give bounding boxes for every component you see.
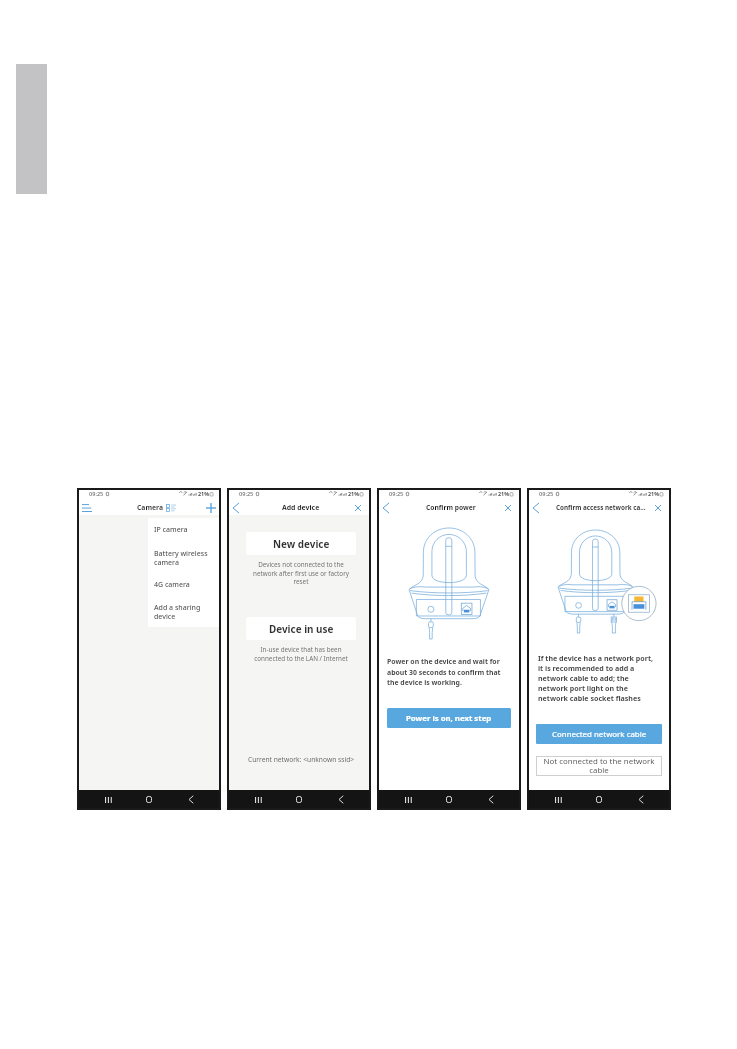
staticText: Add device [282,503,320,512]
button[interactable]: Close [651,501,665,515]
staticText: Add a sharing device [154,603,211,621]
button[interactable]: Back [179,790,203,809]
button[interactable]: Recents [96,790,120,809]
staticText: IP camera [154,525,188,535]
button[interactable]: Power is on, next step [387,708,511,728]
button[interactable]: Home [287,790,311,809]
button[interactable]: Connected network cable [536,724,662,744]
button[interactable]: 4G camera [154,580,211,590]
staticText: New device [273,537,330,550]
staticText: Connected network cable [552,729,647,740]
button[interactable]: Back [379,501,393,515]
staticText: Power is on, next step [406,713,492,724]
button[interactable]: Close [501,501,515,515]
staticText: 09:25 [389,490,404,498]
staticText: 21% [498,490,510,497]
button[interactable]: Not connected to the network cable [536,756,662,776]
staticText: Power on the device and wait for about 3… [387,657,512,687]
staticText: In-use device that has been connected to… [247,645,355,663]
staticText: 09:25 [239,490,254,498]
button[interactable]: Device in use [246,617,356,640]
button[interactable]: Home [587,790,611,809]
button[interactable]: Back [479,790,503,809]
staticText: Device in use [269,622,334,635]
button[interactable]: Recents [546,790,570,809]
staticText: 21% [648,490,660,497]
staticText: Current network: <unknown ssid> [232,755,370,764]
button[interactable]: IP camera [154,525,211,535]
button[interactable]: Back [529,501,543,515]
button[interactable]: Home [137,790,161,809]
staticText: Camera [137,503,164,512]
staticText: If the device has a network port, it is … [538,653,656,703]
button[interactable]: Menu [80,501,94,515]
button[interactable]: Back [629,790,653,809]
button[interactable]: Recents [246,790,270,809]
button[interactable]: New device [246,532,356,555]
staticText: 21% [198,490,210,497]
button[interactable]: Close [351,501,365,515]
staticText: 09:25 [89,490,104,498]
button[interactable]: Add [204,501,218,515]
staticText: Confirm access network ca... [556,503,646,512]
staticText: Devices not connected to the network aft… [249,560,353,586]
button[interactable]: Recents [396,790,420,809]
button[interactable]: Battery wireless camera [154,549,211,567]
staticText: Battery wireless camera [154,549,211,567]
button[interactable]: Back [229,501,243,515]
staticText: 21% [348,490,360,497]
staticText: 09:25 [539,490,554,498]
button[interactable]: Add a sharing device [154,603,211,621]
button[interactable]: Home [437,790,461,809]
staticText: 4G camera [154,580,190,590]
button[interactable]: Back [329,790,353,809]
staticText: Confirm power [426,503,476,512]
staticText: Not connected to the network cable [538,756,660,776]
